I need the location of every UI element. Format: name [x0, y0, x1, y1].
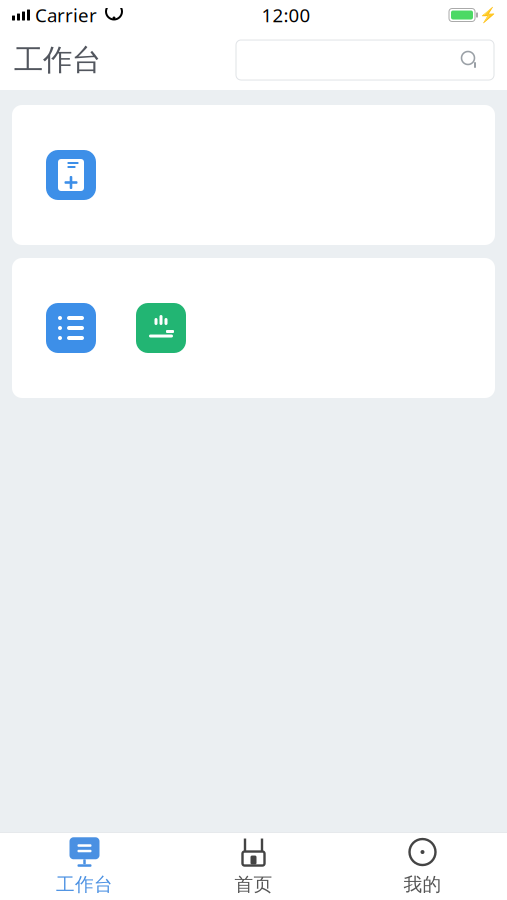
button[interactable]: 数据统计: [136, 303, 186, 353]
button[interactable]: Search: [236, 40, 494, 80]
button[interactable]: 首页: [169, 833, 338, 900]
staticText: 工作台: [14, 42, 101, 78]
staticText: 首页: [234, 873, 272, 896]
button[interactable]: 工作台: [0, 833, 169, 900]
staticText: 我的: [403, 873, 441, 896]
staticText: Carrier: [35, 3, 97, 27]
button[interactable]: 单据列表: [46, 303, 96, 353]
staticText: 12:00: [261, 3, 310, 27]
staticText: ⚡: [479, 7, 497, 23]
button[interactable]: 新建单据: [46, 150, 96, 200]
staticText: 工作台: [56, 873, 113, 896]
button[interactable]: 我的: [338, 833, 507, 900]
